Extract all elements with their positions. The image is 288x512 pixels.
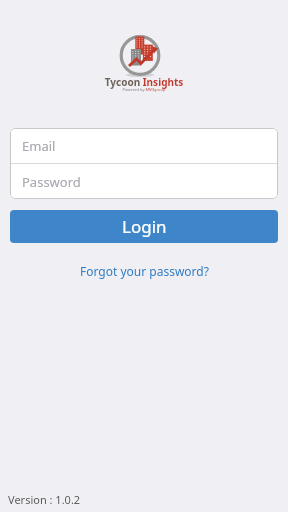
button[interactable]: Password [10, 164, 278, 199]
staticText: Login [122, 215, 167, 238]
button[interactable]: Forgot your password? [80, 263, 209, 279]
staticText: Version : 1.0.2 [8, 492, 81, 507]
staticText: Tycoon Insights [0, 75, 288, 89]
button[interactable]: Login [10, 210, 278, 243]
button[interactable]: Email [10, 128, 278, 163]
staticText: Password [22, 173, 81, 191]
staticText: Powered by MMIgroup [0, 87, 288, 92]
staticText: Email [22, 137, 56, 155]
